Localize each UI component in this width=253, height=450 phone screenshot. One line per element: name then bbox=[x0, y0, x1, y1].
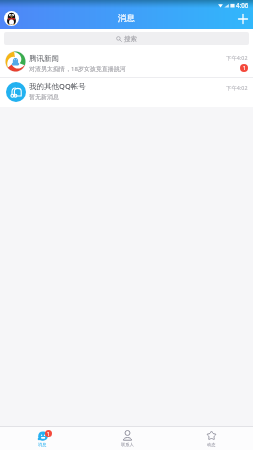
staticText: 1 bbox=[243, 65, 246, 72]
staticText: 1 bbox=[47, 431, 50, 437]
staticText: 我的其他QQ帐号 bbox=[29, 81, 86, 91]
button[interactable]: 动态 bbox=[169, 427, 253, 450]
staticText: 消息 bbox=[118, 13, 135, 24]
staticText: 消息 bbox=[38, 442, 47, 447]
button[interactable]: 腾讯新闻 bbox=[0, 45, 253, 77]
staticText: 动态 bbox=[207, 442, 216, 447]
staticText: 暂无新消息 bbox=[29, 93, 59, 101]
button[interactable]: 1 bbox=[0, 427, 85, 450]
staticText: 对渣男太痴情，18岁女孩竟直播跳河 bbox=[29, 65, 126, 73]
staticText: 腾讯新闻 bbox=[29, 54, 59, 63]
button[interactable]: 联系人 bbox=[85, 427, 169, 450]
button[interactable]: Profile bbox=[4, 11, 19, 26]
staticText: 搜索 bbox=[124, 35, 137, 43]
button[interactable]: 我的其他QQ帐号 bbox=[0, 78, 253, 104]
button[interactable]: 搜索 bbox=[4, 32, 249, 45]
button[interactable]: Add bbox=[233, 9, 253, 29]
staticText: 下午4:02 bbox=[226, 54, 248, 61]
staticText: 下午4:02 bbox=[226, 84, 248, 91]
staticText: 4:06 bbox=[236, 1, 249, 9]
staticText: 联系人 bbox=[121, 442, 134, 447]
